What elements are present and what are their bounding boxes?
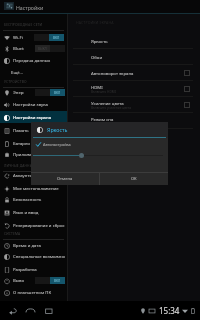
button[interactable]: Отмена: [31, 173, 99, 185]
staticText: Передача данных: [13, 57, 51, 63]
staticText: HDMI: [91, 84, 103, 90]
button[interactable]: Bluetooth: [0, 42, 67, 54]
staticText: Настройки: [16, 4, 44, 11]
button[interactable]: Настройки звука: [0, 98, 67, 110]
button[interactable]: HDMI: [68, 81, 200, 97]
button[interactable]: Язык и ввод: [0, 206, 67, 218]
button[interactable]: Автоповорот экрана: [68, 65, 200, 81]
button[interactable]: Ещё...: [0, 66, 67, 78]
button[interactable]: ОК: [100, 173, 168, 185]
button[interactable]: Время и дата: [0, 239, 67, 251]
button[interactable]: Wi-Fi: [0, 31, 67, 43]
button[interactable]: Батарея: [0, 137, 67, 149]
staticText: Wi-Fi: [13, 34, 23, 40]
staticText: ВКЛ: [54, 91, 61, 95]
staticText: ОК: [131, 176, 137, 182]
staticText: Время и дата: [13, 242, 41, 248]
button[interactable]: Резервирование и сброс: [0, 219, 67, 231]
button[interactable]: Передача данных: [0, 54, 67, 66]
staticText: Приложения: [13, 151, 40, 157]
staticText: Память: [13, 127, 29, 133]
staticText: Отмена: [57, 176, 73, 182]
staticText: Режим сна: [91, 116, 114, 122]
button[interactable]: Усиление цвета: [68, 97, 200, 113]
staticText: Bluetooth: [13, 45, 24, 51]
button[interactable]: Настройки экрана: [0, 111, 67, 123]
staticText: Настройки экрана: [13, 114, 52, 120]
staticText: Язык и ввод: [13, 209, 39, 215]
staticText: Настройки звука: [13, 101, 48, 107]
button[interactable]: Home: [24, 304, 37, 317]
button[interactable]: О планшетном ПК: [0, 286, 67, 298]
staticText: Специальные возможности: [13, 253, 65, 259]
staticText: Автоповорот экрана: [91, 70, 134, 76]
button[interactable]: Режим сна: [68, 113, 200, 129]
button[interactable]: Специальные возможности: [0, 250, 67, 262]
staticText: Разработка: [13, 266, 37, 272]
staticText: Энерг.: [13, 89, 24, 95]
button[interactable]: Разработка: [0, 263, 67, 275]
staticText: Включить HDMI: [91, 90, 116, 94]
staticText: Батарея: [13, 140, 30, 146]
staticText: Вывод: [13, 277, 24, 283]
button[interactable]: Энерг.: [0, 86, 67, 98]
button[interactable]: Switch on: [35, 86, 65, 98]
button[interactable]: Recent apps: [42, 304, 55, 317]
staticText: Обои: [91, 54, 103, 60]
staticText: Аккаунты: [13, 172, 33, 178]
staticText: Безопасность: [13, 196, 42, 202]
staticText: О планшетном ПК: [13, 289, 52, 295]
staticText: ВЫКЛ: [38, 47, 47, 51]
staticText: Яркость: [91, 38, 108, 44]
staticText: ЛИЧНЫЕ ДАННЫЕ: [4, 163, 35, 167]
button[interactable]: Обои: [68, 49, 200, 65]
staticText: Автонастройка: [43, 142, 71, 147]
staticText: ВКЛ: [54, 279, 61, 283]
staticText: Включить усиление цвета: [91, 106, 132, 110]
staticText: УСТРОЙСТВО: [4, 79, 27, 83]
staticText: Ещё...: [11, 69, 24, 75]
staticText: Усиление цвета: [91, 100, 124, 106]
button[interactable]: Back: [6, 304, 19, 317]
staticText: НАСТРОЙКИ ЭКРАНА: [76, 20, 114, 25]
button[interactable]: Безопасность: [0, 193, 67, 205]
staticText: ВКЛ: [53, 36, 60, 40]
staticText: БЕСПРОВОДНЫЕ СЕТИ: [4, 22, 43, 26]
staticText: Резервирование и сброс: [13, 222, 65, 228]
button[interactable]: Вывод: [0, 274, 67, 286]
button[interactable]: Яркость: [68, 33, 200, 49]
button[interactable]: Память: [0, 124, 67, 136]
button[interactable]: Приложения: [0, 148, 67, 160]
staticText: Мое местоположение: [13, 185, 59, 191]
button[interactable]: Аккаунты: [0, 169, 67, 181]
button[interactable]: Мое местоположение: [0, 182, 67, 194]
button[interactable]: Switch off: [35, 42, 65, 54]
button[interactable]: Switch on: [35, 274, 65, 286]
staticText: 15:34: [159, 305, 180, 316]
button[interactable]: Switch on: [34, 31, 64, 43]
staticText: Яркость: [47, 126, 68, 133]
staticText: СИСТЕМА: [4, 231, 21, 235]
